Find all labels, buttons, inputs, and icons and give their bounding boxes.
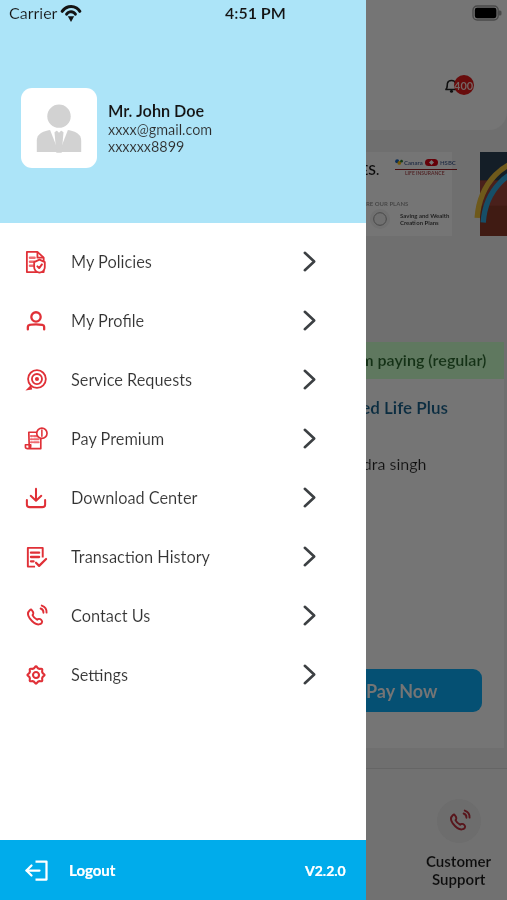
staticText: V2.2.0 [305,862,346,879]
button[interactable]: Settings [0,645,366,704]
button[interactable]: Download Center [0,468,366,527]
button[interactable]: Service Requests [0,350,366,409]
staticText: Canara HSBC Guaranteed Life Plus [185,397,449,417]
button[interactable]: Contact Us [0,586,366,645]
staticText: EXPLORE OUR PLANS [347,200,409,207]
staticText: Settings [71,665,129,685]
staticText: Support [432,870,486,888]
staticText: Download Center [71,488,198,508]
staticText: SECURE YOUR FAMILIES. [217,161,380,178]
staticText: Pay Premium [71,429,165,449]
staticText: My Profile [71,311,145,331]
staticText: HSBC [440,159,456,166]
staticText: xxxx@gmail.com [108,121,213,138]
staticText: Your premium paying (regular) [274,350,487,369]
staticText: Logout [69,861,116,879]
staticText: Canara [404,159,423,166]
button[interactable]: Logout [0,840,366,900]
staticText: Creation Plans [400,219,439,226]
staticText: Mr. Jitendra singh [302,454,427,473]
staticText: Pay Now [366,680,438,702]
button[interactable]: Pay Premium [0,409,366,468]
staticText: Carrier [9,3,58,22]
button[interactable]: My Policies [0,232,366,291]
staticText: 4:51 PM [225,3,286,22]
button[interactable]: My Profile [0,291,366,350]
staticText: LIFE INSURANCE [405,170,445,176]
staticText: Mr. John Doe [108,101,205,120]
button[interactable]: Transaction History [0,527,366,586]
staticText: My Policies [71,252,152,272]
staticText: Service Requests [71,370,193,390]
staticText: 400 [454,79,474,92]
staticText: Saving and Wealth [400,212,450,219]
staticText: Contact Us [71,606,151,626]
staticText: Transaction History [71,547,210,567]
staticText: Customer [426,852,492,870]
staticText: xxxxxx8899 [108,138,185,155]
